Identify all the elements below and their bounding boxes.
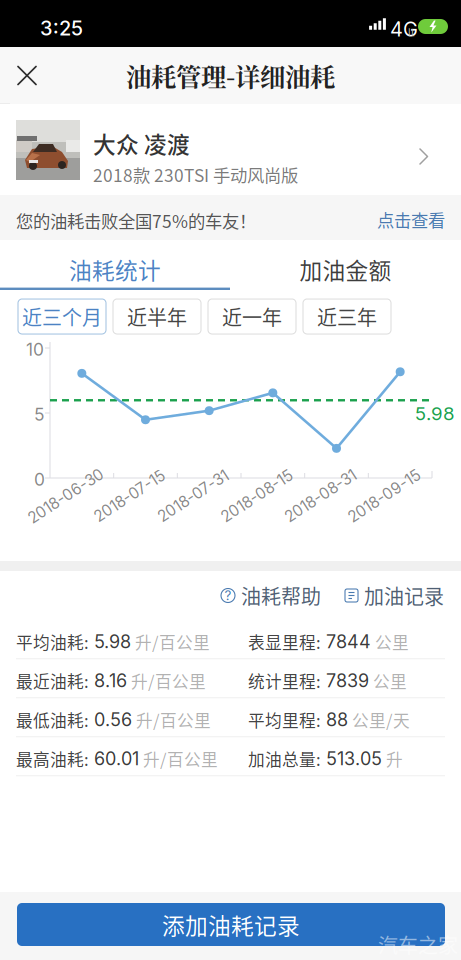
staticText: 2018-06-30 [22,487,109,505]
staticText: 加油记录 [364,581,444,610]
button[interactable]: 近半年 [113,299,201,334]
staticText: 2018-09-15 [343,487,426,505]
staticText: 5.98 [415,402,455,425]
staticText: 表显里程: [248,630,321,654]
button[interactable]: 点击查看 [371,197,451,242]
staticText: 升/百公里 [127,669,206,693]
button[interactable]: 加油记录 [345,575,444,616]
staticText: 升 [382,747,403,771]
staticText: 近一年 [222,302,282,331]
button[interactable]: 近三年 [303,299,391,334]
button[interactable]: Close [0,47,54,104]
staticText: 公里 [369,669,407,693]
button[interactable]: ? [221,575,321,616]
button[interactable]: 大众 凌渡 [0,104,461,196]
button[interactable]: 近三个月 [18,299,106,334]
staticText: 60.01 [89,748,139,770]
staticText: 最低油耗: [16,708,89,732]
button[interactable]: 近一年 [208,299,296,334]
staticText: 升/百公里 [139,747,218,771]
staticText: 油耗统计 [69,253,161,286]
staticText: 近半年 [127,302,187,331]
button[interactable]: 油耗统计 [0,241,230,290]
staticText: 油耗帮助 [241,581,321,610]
staticText: 2018-07-31 [153,487,234,505]
staticText: 平均油耗: [16,630,89,654]
staticText: lt [408,26,414,39]
staticText: 近三年 [317,302,377,331]
staticText: 3:25 [40,16,83,40]
staticText: 加油金额 [299,253,391,286]
staticText: 升/百公里 [131,630,210,654]
staticText: 2018-08-31 [279,487,361,505]
staticText: 10 [26,339,44,360]
staticText: 最高油耗: [16,747,89,771]
staticText: 最近油耗: [16,669,89,693]
staticText: ? [224,587,231,603]
staticText: 加油总量: [248,747,321,771]
button[interactable]: 添加油耗记录 [17,903,445,946]
staticText: 油耗管理-详细油耗 [126,57,335,94]
staticText: 公里 [371,630,409,654]
staticText: 0 [34,469,45,490]
staticText: 统计里程: [248,669,321,693]
staticText: 7839 [321,670,369,692]
staticText: 汽车之家 [378,930,458,959]
staticText: 2018-07-15 [89,487,170,505]
staticText: 升/百公里 [132,708,211,732]
staticText: 5.98 [89,631,131,653]
staticText: 4G [390,17,418,41]
staticText: 公里/天 [348,708,410,732]
staticText: 513.05 [321,748,382,770]
staticText: 5 [34,404,45,425]
staticText: 添加油耗记录 [162,908,300,941]
staticText: 2018-08-15 [216,487,298,505]
staticText: 平均里程: [248,708,321,732]
staticText: 7844 [321,631,371,653]
staticText: 近三个月 [22,302,102,331]
staticText: 点击查看 [377,207,445,232]
staticText: 88 [321,709,348,731]
staticText: 2018款 230TSI 手动风尚版 [93,162,298,187]
button[interactable]: 加油金额 [230,241,461,290]
staticText: 0.56 [89,709,132,731]
staticText: 您的油耗击败全国75%的车友！ [16,208,256,233]
staticText: 8.16 [89,670,127,692]
staticText: 大众 凌渡 [93,127,190,160]
